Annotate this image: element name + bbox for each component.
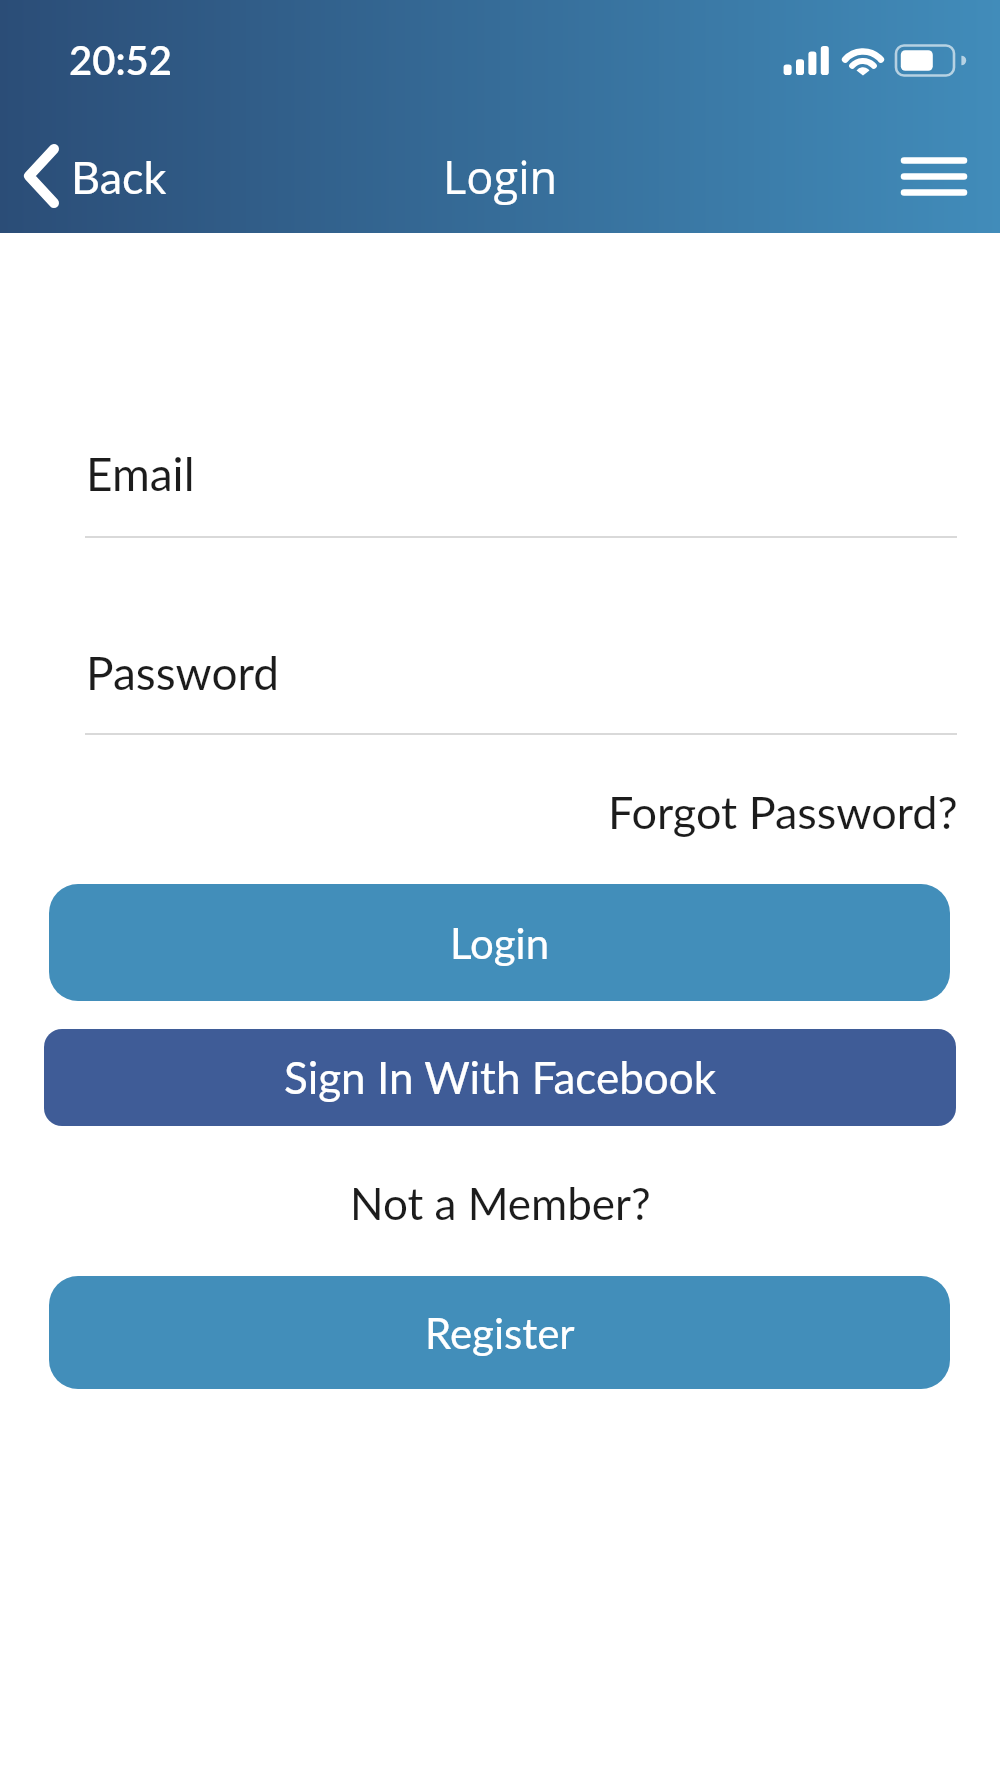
staticText: Login <box>450 918 550 968</box>
staticText: Register <box>425 1308 575 1358</box>
button[interactable]: Login <box>49 884 950 1001</box>
button[interactable]: Register <box>49 1276 950 1389</box>
staticText: Login <box>443 146 558 207</box>
button[interactable]: Password <box>85 617 957 735</box>
staticText: Email <box>86 446 195 501</box>
staticText: Password <box>86 645 280 700</box>
staticText: Forgot Password? <box>608 785 958 839</box>
button[interactable]: Email <box>85 420 957 538</box>
staticText: Not a Member? <box>350 1177 651 1230</box>
staticText: 20:52 <box>69 36 172 84</box>
button[interactable] <box>886 140 982 213</box>
button[interactable]: Sign In With Facebook <box>44 1029 956 1126</box>
staticText: Sign In With Facebook <box>284 1051 717 1104</box>
button[interactable]: Forgot Password? <box>608 785 958 839</box>
button[interactable]: Back <box>10 130 180 222</box>
staticText: Back <box>71 150 167 204</box>
